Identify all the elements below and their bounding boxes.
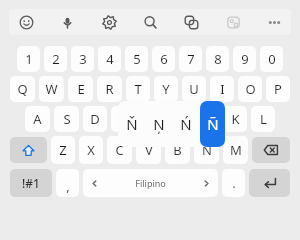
staticText: !#1: [22, 175, 40, 191]
staticText: D: [90, 110, 100, 128]
button[interactable]: Voice input: [54, 9, 80, 35]
staticText: Ń: [180, 114, 192, 134]
staticText: 0: [268, 50, 276, 68]
staticText: Ň: [126, 114, 138, 134]
staticText: U: [189, 80, 199, 98]
staticText: C: [115, 141, 124, 159]
button[interactable]: 2: [44, 46, 67, 72]
button[interactable]: Ń: [172, 101, 199, 147]
button[interactable]: P: [266, 76, 290, 102]
button[interactable]: J: [195, 106, 219, 132]
button[interactable]: S: [54, 106, 79, 132]
button[interactable]: Settings: [96, 9, 122, 35]
button[interactable]: Q: [10, 76, 35, 102]
button[interactable]: 0: [260, 46, 283, 72]
button[interactable]: G: [139, 106, 163, 132]
staticText: 3: [79, 50, 87, 68]
staticText: Y: [162, 80, 170, 98]
button[interactable]: 3: [71, 46, 94, 72]
button[interactable]: I: [210, 76, 234, 102]
staticText: 1: [25, 50, 33, 68]
button[interactable]: T: [126, 76, 150, 102]
staticText: M: [230, 141, 242, 159]
button[interactable]: B: [165, 136, 190, 164]
button[interactable]: M: [223, 136, 248, 164]
button[interactable]: U: [182, 76, 206, 102]
button[interactable]: Y: [154, 76, 178, 102]
button[interactable]: 6: [152, 46, 175, 72]
staticText: T: [134, 80, 142, 98]
button[interactable]: O: [238, 76, 262, 102]
staticText: Z: [59, 141, 67, 159]
button[interactable]: V: [136, 136, 161, 164]
button[interactable]: 5: [125, 46, 148, 72]
button[interactable]: Shift: [10, 137, 47, 163]
staticText: N: [202, 141, 212, 159]
staticText: 2: [52, 50, 60, 68]
staticText: .: [232, 174, 236, 192]
button[interactable]: X: [79, 136, 103, 164]
button[interactable]: 1: [17, 46, 40, 72]
staticText: Q: [17, 80, 28, 98]
staticText: G: [146, 110, 156, 128]
button[interactable]: F: [111, 106, 135, 132]
button[interactable]: W: [39, 76, 64, 102]
staticText: Ņ: [153, 114, 165, 134]
button[interactable]: Z: [51, 136, 75, 164]
button[interactable]: More options: [261, 9, 287, 35]
button[interactable]: Search: [137, 9, 163, 35]
button[interactable]: N: [194, 136, 219, 164]
staticText: 6: [160, 50, 168, 68]
staticText: I: [220, 80, 225, 98]
staticText: 5: [133, 50, 141, 68]
button[interactable]: .: [222, 169, 245, 197]
staticText: R: [105, 80, 114, 98]
button[interactable]: K: [223, 106, 247, 132]
staticText: 8: [214, 50, 222, 68]
button[interactable]: H: [167, 106, 191, 132]
button[interactable]: Ņ: [145, 101, 172, 147]
staticText: Ñ: [207, 114, 219, 134]
button[interactable]: C: [107, 136, 132, 164]
button[interactable]: Ň: [118, 101, 145, 147]
button[interactable]: Emoji: [13, 9, 39, 35]
staticText: E: [77, 80, 85, 98]
button[interactable]: E: [68, 76, 93, 102]
staticText: B: [173, 141, 182, 159]
staticText: Filipino: [135, 177, 166, 189]
staticText: X: [87, 141, 95, 159]
staticText: 4: [106, 50, 114, 68]
button[interactable]: 7: [179, 46, 202, 72]
button[interactable]: 9: [233, 46, 256, 72]
staticText: ,: [66, 177, 70, 195]
staticText: S: [63, 110, 71, 128]
button[interactable]: !#1: [10, 169, 52, 197]
button[interactable]: L: [251, 106, 275, 132]
staticText: 9: [241, 50, 249, 68]
button[interactable]: D: [83, 106, 107, 132]
button[interactable]: Enter: [249, 169, 290, 197]
staticText: P: [274, 80, 282, 98]
button[interactable]: A: [25, 106, 50, 132]
staticText: H: [174, 110, 184, 128]
button[interactable]: ,: [56, 169, 79, 197]
button[interactable]: Stickers: [220, 9, 246, 35]
staticText: W: [45, 80, 58, 98]
button[interactable]: Translate: [178, 9, 204, 35]
button[interactable]: 4: [98, 46, 121, 72]
button[interactable]: Ñ: [200, 101, 225, 147]
button[interactable]: Space, Filipino: [83, 169, 218, 197]
button[interactable]: R: [97, 76, 122, 102]
staticText: J: [205, 110, 209, 128]
staticText: V: [145, 141, 153, 159]
staticText: L: [260, 110, 267, 128]
staticText: 7: [187, 50, 195, 68]
button[interactable]: 8: [206, 46, 229, 72]
staticText: K: [231, 110, 240, 128]
staticText: A: [33, 110, 42, 128]
staticText: O: [245, 80, 256, 98]
button[interactable]: Backspace: [252, 137, 290, 163]
